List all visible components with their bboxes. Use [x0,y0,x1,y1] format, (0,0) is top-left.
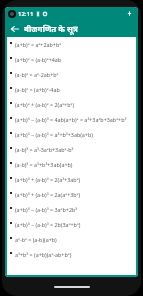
button[interactable]: (a+b)³ − (a-b)³ = 3a²b+2b³ [7,202,136,217]
staticText: (a+b)³ − (a-b)³ = 3a²b+2b³ [15,206,78,213]
button[interactable]: (a-b)² = a²-2ab+b² [7,67,136,82]
staticText: 12:11 [18,10,34,18]
staticText: (a+b)² = (a-b)²+4ab [15,56,62,63]
button[interactable]: (a+b)² + (a-b)² = 2(a²+b²) [7,97,136,112]
button[interactable]: (a+b)³ − (a-b)³ = a³+b³+3ab(a+b) [7,127,136,142]
staticText: बीजगणित के सूत्र [24,23,78,34]
staticText: (a-b)² = a²-2ab+b² [15,71,59,78]
button[interactable]: a²-b² = (a-b)(a+b) [7,232,136,247]
staticText: (a-b)³ = a³-3a²b+3ab²-b³ [15,146,74,153]
staticText: a³+b³ = (a+b)(a²-ab+b²) [15,251,72,258]
staticText: (a+b)³ + (a-b)³ = 2(a³+3ab²) [15,176,81,183]
button[interactable]: Back [8,22,21,35]
staticText: (a+b)³ + (a-b)³ = 2a(a²+3b²) [15,191,81,198]
button[interactable]: (a-b)³ = a³-3a²b+3ab²-b³ [7,142,136,157]
button[interactable]: (a-b)² = (a+b)²-4ab [7,82,136,97]
button[interactable]: (a+b)³ − (a-b)³ = 4ab(a+b)² = a³+3a²b+3a… [7,112,136,127]
button[interactable]: (a+b)³ − (a-b)³ = 2b(3a²+b²) [7,217,136,232]
button[interactable]: a³+b³ = (a+b)(a²-ab+b²) [7,247,136,262]
button[interactable]: (a+b)² = a²+2ab+b² [7,37,136,52]
button[interactable]: (a+b)³ + (a-b)³ = 2a(a²+3b²) [7,187,136,202]
staticText: (a+b)² = a²+2ab+b² [15,41,62,48]
staticText: a²-b² = (a-b)(a+b) [15,236,57,243]
staticText: (a+b)² + (a-b)² = 2(a²+b²) [15,101,75,108]
staticText: (a-b)³ = a³+b³+3ab(a+b) [15,161,73,168]
button[interactable]: (a-b)³ = a³+b³+3ab(a+b) [7,157,136,172]
staticText: (a+b)³ − (a-b)³ = 4ab(a+b)² = a³+3a²b+3a… [15,116,127,123]
staticText: (a+b)³ − (a-b)³ = 2b(3a²+b²) [15,221,81,228]
staticText: (a+b)³ − (a-b)³ = a³+b³+3ab(a+b) [15,131,93,138]
staticText: (a-b)² = (a+b)²-4ab [15,86,60,93]
button[interactable]: (a+b)³ + (a-b)³ = 2(a³+3ab²) [7,172,136,187]
button[interactable]: (a+b)² = (a-b)²+4ab [7,52,136,67]
